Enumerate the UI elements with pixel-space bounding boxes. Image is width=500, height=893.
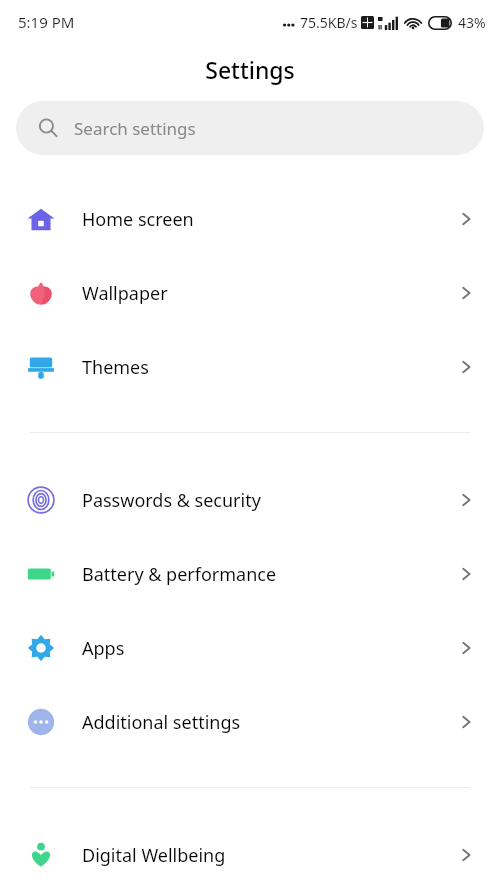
staticText: Battery & performance (82, 562, 456, 587)
button[interactable]: Search settings (16, 101, 484, 155)
staticText: Digital Wellbeing (82, 843, 456, 868)
staticText: Apps (82, 636, 456, 661)
button[interactable]: Battery & performance (0, 537, 500, 611)
button[interactable]: Digital Wellbeing (0, 818, 500, 892)
staticText: 75.5KB/s (300, 13, 358, 32)
button[interactable]: Themes (0, 330, 500, 404)
staticText: Search settings (74, 117, 196, 140)
button[interactable]: Home screen (0, 182, 500, 256)
staticText: 5:19 PM (18, 12, 75, 32)
button[interactable]: Additional settings (0, 685, 500, 759)
button[interactable]: Wallpaper (0, 256, 500, 330)
staticText: Wallpaper (82, 281, 456, 306)
staticText: Passwords & security (82, 488, 456, 513)
staticText: 43% (458, 13, 486, 32)
button[interactable]: Apps (0, 611, 500, 685)
staticText: Themes (82, 355, 456, 380)
staticText: Home screen (82, 207, 456, 232)
button[interactable]: Passwords & security (0, 463, 500, 537)
staticText: Settings (205, 54, 295, 85)
staticText: Additional settings (82, 710, 456, 735)
